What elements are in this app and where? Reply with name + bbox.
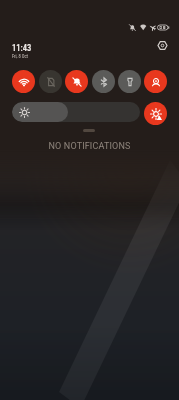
button[interactable]: Location — [144, 70, 167, 93]
button[interactable]: Flashlight — [118, 70, 141, 93]
button[interactable]: Mobile data — [39, 70, 62, 93]
button[interactable]: Bluetooth — [92, 70, 115, 93]
button[interactable]: Silent mode — [65, 70, 88, 93]
staticText: 11:43 — [12, 43, 32, 53]
staticText: NO NOTIFICATIONS — [0, 141, 179, 152]
staticText: Fri, 8 Oct — [12, 54, 28, 59]
button[interactable]: Settings — [152, 35, 172, 55]
button[interactable]: Wi-Fi — [12, 70, 35, 93]
button[interactable]: Brightness — [12, 102, 140, 122]
button[interactable]: Auto brightness — [144, 102, 167, 125]
